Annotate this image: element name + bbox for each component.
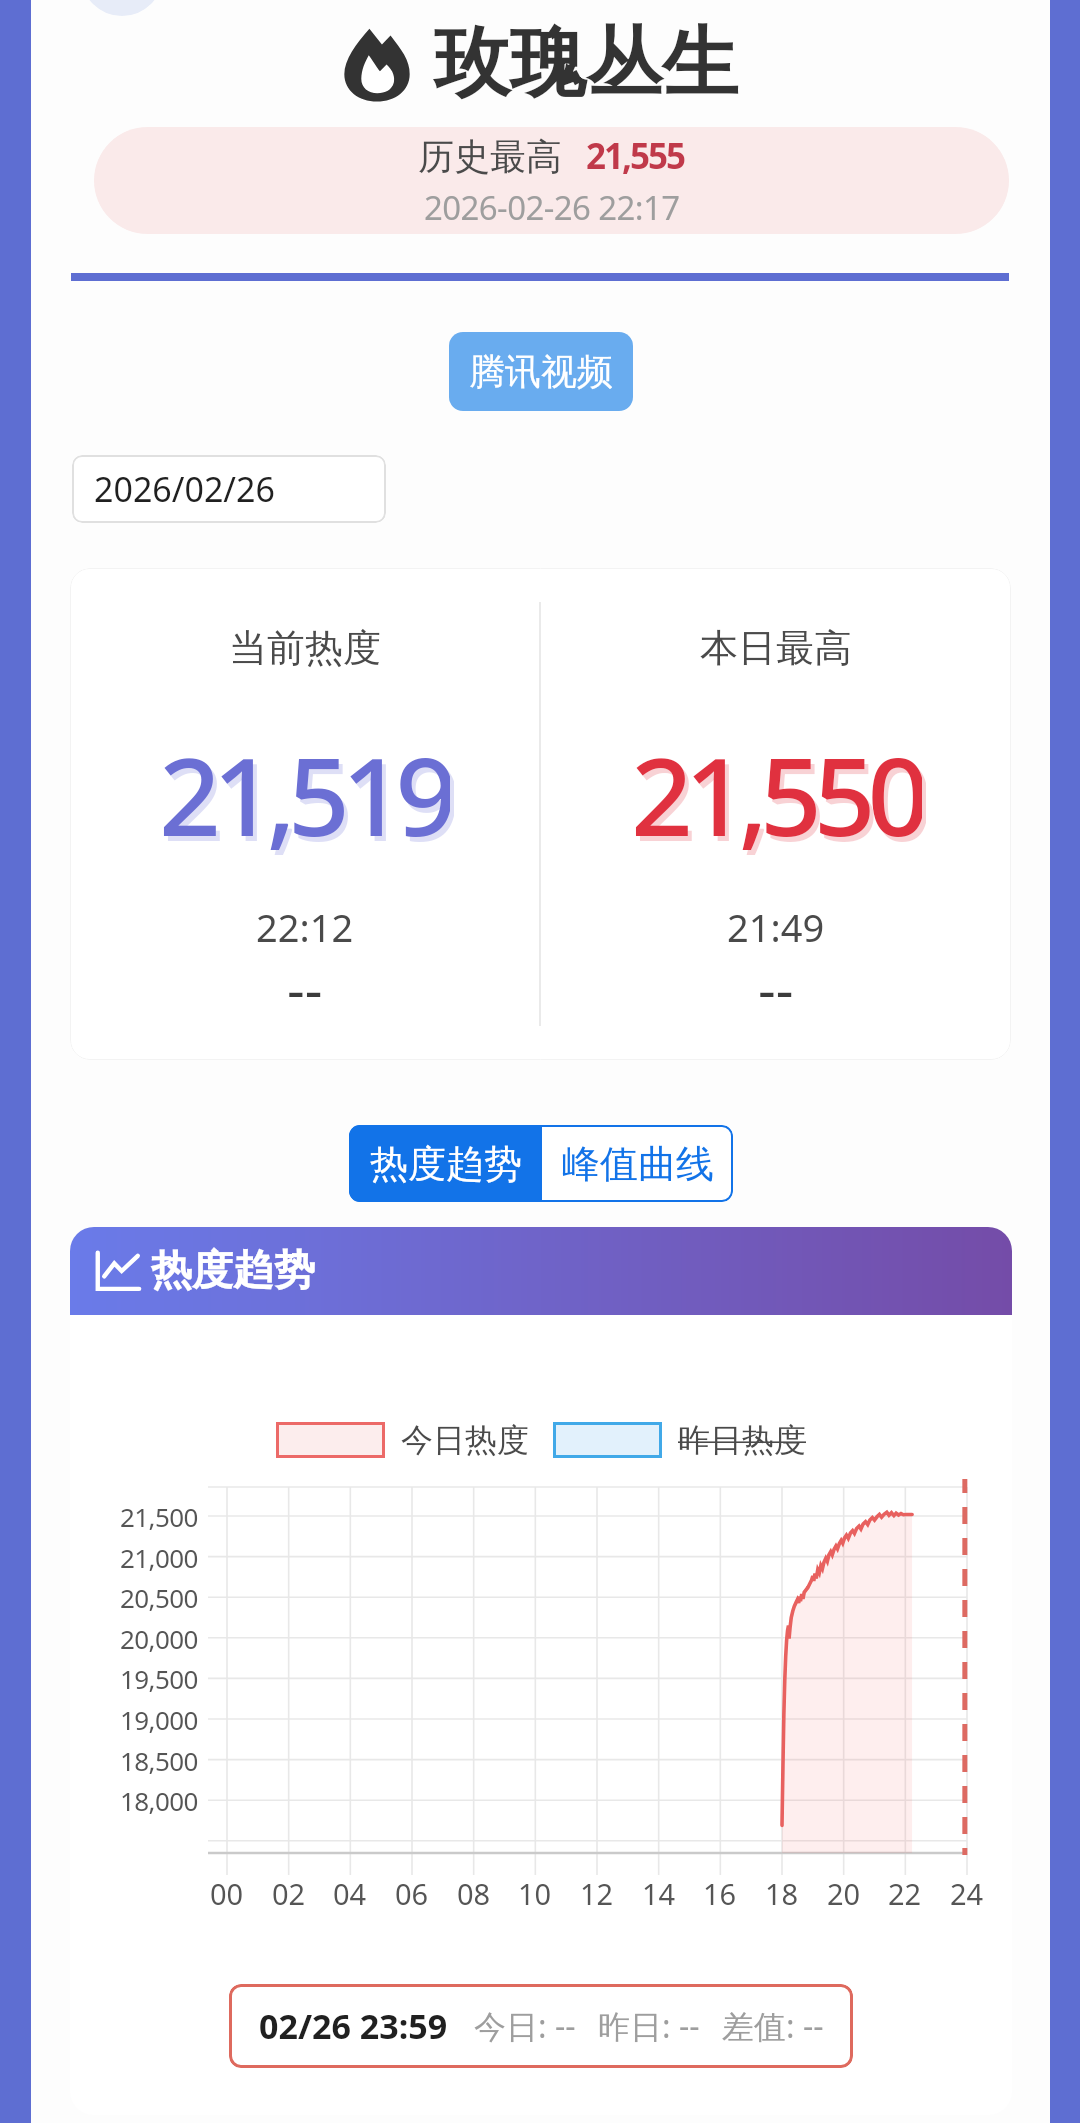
staticText: 玫瑰丛生 <box>434 16 738 112</box>
staticText: 本日最高 <box>700 624 852 672</box>
staticText: 2026/02/26 <box>94 466 275 512</box>
staticText: 20 <box>827 1874 861 1913</box>
staticText: 腾讯视频 <box>469 349 613 394</box>
staticText: 08 <box>457 1874 491 1913</box>
staticText: 21,550 <box>631 721 922 855</box>
button[interactable]: 2026/02/26 <box>72 455 386 523</box>
staticText: 今日: -- <box>474 2004 576 2048</box>
staticText: 19,000 <box>120 1702 198 1737</box>
staticText: 热度趋势 <box>151 1245 315 1297</box>
button[interactable]: 当前热度 <box>70 568 539 1060</box>
staticText: 21,500 <box>120 1499 198 1534</box>
staticText: -- <box>287 951 323 1007</box>
staticText: 18,500 <box>120 1743 198 1778</box>
staticText: 22:12 <box>256 901 354 951</box>
staticText: 20,500 <box>120 1580 198 1615</box>
staticText: 22 <box>888 1874 922 1913</box>
staticText: -- <box>758 951 794 1007</box>
staticText: 今日热度 <box>401 1420 529 1460</box>
staticText: 16 <box>703 1874 737 1913</box>
staticText: 02 <box>272 1874 306 1913</box>
staticText: 峰值曲线 <box>562 1140 714 1188</box>
staticText: 当前热度 <box>229 624 381 672</box>
staticText: 21,519 <box>163 726 454 860</box>
staticText: 19,500 <box>120 1661 198 1696</box>
staticText: 21,550 <box>635 726 926 860</box>
button[interactable]: 热度趋势 <box>349 1125 542 1202</box>
staticText: 热度趋势 <box>370 1140 522 1188</box>
staticText: 21,519 <box>159 721 450 855</box>
staticText: 昨日: -- <box>598 2004 700 2048</box>
staticText: 18 <box>765 1874 799 1913</box>
button[interactable]: 本日最高 <box>541 568 1011 1060</box>
staticText: 14 <box>642 1874 676 1913</box>
staticText: 差值: -- <box>722 2004 824 2048</box>
staticText: 18,000 <box>120 1783 198 1818</box>
staticText: 2026-02-26 22:17 <box>424 185 680 230</box>
staticText: 21,555 <box>586 132 685 180</box>
staticText: 12 <box>580 1874 614 1913</box>
staticText: 24 <box>950 1874 984 1913</box>
button[interactable]: 腾讯视频 <box>449 332 633 411</box>
other: Hot <box>344 26 410 102</box>
staticText: 10 <box>518 1874 552 1913</box>
button[interactable]: 峰值曲线 <box>542 1125 733 1202</box>
staticText: 21,000 <box>120 1540 198 1575</box>
staticText: 昨日热度 <box>678 1420 806 1460</box>
staticText: 02/26 23:59 <box>259 2003 448 2049</box>
staticText: 历史最高 <box>418 134 562 179</box>
staticText: 20,000 <box>120 1621 198 1656</box>
staticText: 00 <box>210 1874 244 1913</box>
staticText: 21:49 <box>727 901 825 951</box>
staticText: 06 <box>395 1874 429 1913</box>
staticText: 04 <box>333 1874 367 1913</box>
